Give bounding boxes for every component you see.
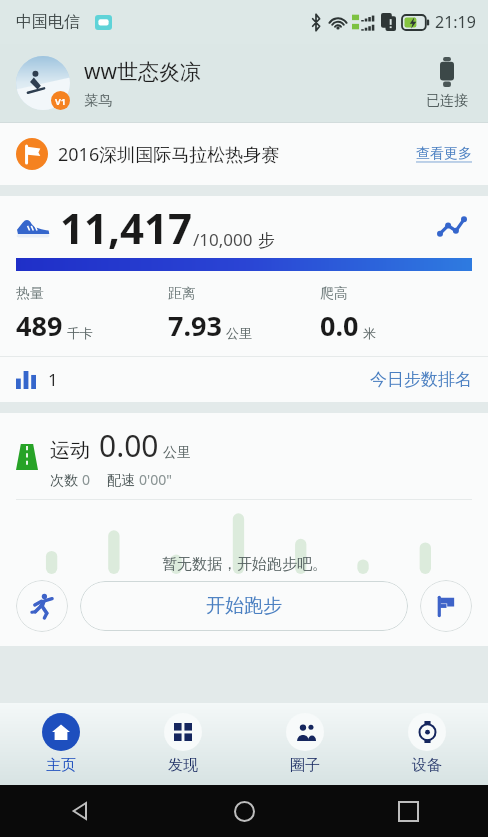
staticText: 设备 (412, 756, 442, 775)
staticText: 今日步数排名 (370, 369, 472, 390)
staticText: 发现 (168, 756, 198, 775)
staticText: 次数 (50, 470, 82, 489)
button[interactable]: Home (224, 791, 264, 831)
staticText: 开始跑步 (206, 594, 282, 618)
staticText: 0 (82, 470, 91, 489)
button[interactable]: 1 (0, 357, 488, 402)
staticText: 运动 (50, 438, 90, 463)
staticText: /10,000 (193, 228, 253, 251)
button[interactable]: 发现 (122, 703, 244, 785)
button[interactable]: 设备 (366, 703, 488, 785)
staticText: 21:19 (435, 11, 476, 33)
button[interactable]: Race events (420, 580, 472, 632)
staticText: 配速 (107, 470, 139, 489)
button[interactable]: 距离 (168, 285, 320, 344)
staticText: 距离 (168, 285, 196, 303)
button[interactable]: Step trend chart (432, 207, 472, 247)
staticText: 查看更多 (416, 145, 472, 163)
staticText: ww世态炎凉 (84, 57, 202, 86)
staticText: 爬高 (320, 285, 348, 303)
staticText: 已连接 (426, 92, 468, 110)
staticText: 圈子 (290, 756, 320, 775)
staticText: 中国电信 (16, 12, 80, 32)
button[interactable]: Recent apps (388, 791, 428, 831)
button[interactable]: 热量 (16, 285, 168, 344)
button[interactable]: V1 (0, 44, 488, 122)
button[interactable]: 圈子 (244, 703, 366, 785)
staticText: 热量 (16, 285, 44, 303)
staticText: 千卡 (67, 325, 93, 341)
button[interactable]: 爬高 (320, 285, 472, 344)
staticText: 公里 (163, 444, 191, 462)
staticText: 0'00" (139, 470, 172, 489)
staticText: 米 (363, 325, 376, 341)
staticText: 步 (258, 230, 275, 251)
button[interactable]: 主页 (0, 703, 122, 785)
button[interactable]: 开始跑步 (80, 581, 408, 631)
staticText: 1 (48, 368, 58, 391)
staticText: 7.93 (168, 307, 222, 344)
button[interactable]: 运动 (0, 425, 488, 489)
staticText: 2016深圳国际马拉松热身赛 (58, 142, 416, 167)
button[interactable]: 2016深圳国际马拉松热身赛 (0, 123, 488, 185)
staticText: 0.0 (320, 307, 359, 344)
button[interactable]: Running activity (16, 580, 68, 632)
staticText: 主页 (46, 756, 76, 775)
button[interactable]: Back (60, 791, 100, 831)
staticText: 公里 (226, 325, 252, 341)
staticText: 暂无数据，开始跑步吧。 (162, 555, 327, 574)
button[interactable]: Device connected (422, 57, 472, 110)
staticText: 0.00 (99, 425, 159, 466)
staticText: 489 (16, 307, 63, 344)
button[interactable]: 11,417 (0, 196, 488, 258)
staticText: 11,417 (60, 199, 193, 256)
staticText: 菜鸟 (84, 92, 112, 110)
staticText: V1 (55, 95, 66, 107)
